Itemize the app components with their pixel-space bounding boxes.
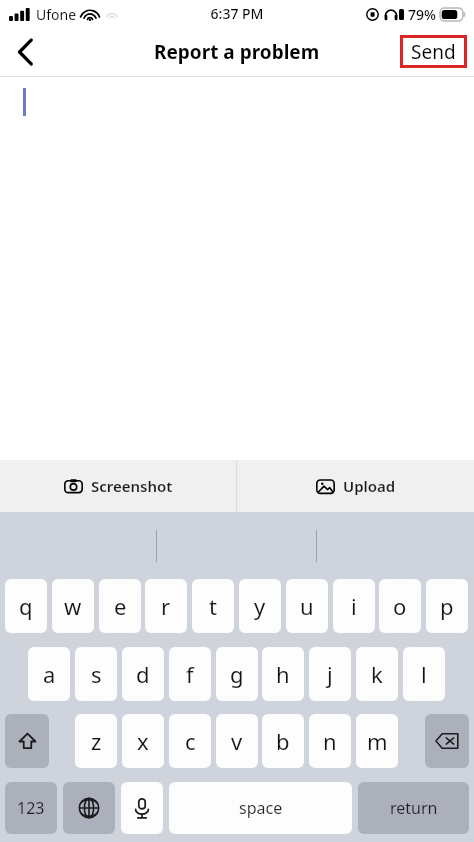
staticText: t — [209, 591, 217, 621]
button[interactable]: k — [356, 647, 398, 701]
button[interactable]: Upload — [237, 460, 474, 512]
button[interactable]: Dictate — [121, 782, 163, 834]
staticText: r — [161, 591, 171, 621]
staticText: m — [367, 726, 388, 756]
staticText: j — [327, 659, 333, 689]
button[interactable]: h — [262, 647, 304, 701]
staticText: l — [421, 659, 427, 689]
button[interactable]: q — [5, 579, 47, 633]
button[interactable]: c — [169, 714, 211, 768]
staticText: o — [393, 591, 407, 621]
staticText: z — [91, 726, 102, 756]
button[interactable]: x — [122, 714, 164, 768]
button[interactable]: Switch keyboard — [63, 782, 115, 834]
button[interactable]: j — [309, 647, 351, 701]
button[interactable]: 123 — [5, 782, 57, 834]
staticText: Screenshot — [91, 476, 173, 496]
button[interactable]: t — [192, 579, 234, 633]
staticText: v — [231, 726, 243, 756]
button[interactable]: l — [403, 647, 445, 701]
button[interactable]: d — [122, 647, 164, 701]
staticText: w — [64, 591, 82, 621]
button[interactable]: e — [99, 579, 141, 633]
button[interactable]: b — [262, 714, 304, 768]
staticText: n — [323, 726, 337, 756]
button[interactable]: Screenshot — [0, 460, 236, 512]
staticText: f — [186, 659, 194, 689]
button[interactable]: space — [169, 782, 352, 834]
staticText: q — [19, 591, 33, 621]
button[interactable]: w — [52, 579, 94, 633]
button[interactable]: Backspace — [425, 714, 469, 768]
button[interactable]: Shift — [5, 714, 49, 768]
button[interactable]: z — [75, 714, 117, 768]
staticText: b — [276, 726, 290, 756]
button[interactable]: n — [309, 714, 351, 768]
button[interactable]: m — [356, 714, 398, 768]
button[interactable]: return — [358, 782, 469, 834]
staticText: g — [230, 659, 244, 689]
button[interactable]: Back — [0, 28, 50, 76]
staticText: 123 — [17, 797, 45, 819]
button[interactable]: v — [216, 714, 258, 768]
staticText: Report a problem — [154, 39, 320, 65]
button[interactable]: g — [216, 647, 258, 701]
staticText: c — [185, 726, 196, 756]
button[interactable]: Send — [403, 38, 464, 65]
button[interactable]: y — [239, 579, 281, 633]
button[interactable]: f — [169, 647, 211, 701]
staticText: k — [371, 659, 383, 689]
button[interactable]: i — [333, 579, 375, 633]
staticText: space — [239, 797, 283, 819]
staticText: 79% — [408, 5, 436, 24]
button[interactable]: u — [286, 579, 328, 633]
staticText: i — [351, 591, 357, 621]
staticText: d — [136, 659, 150, 689]
button[interactable]: s — [75, 647, 117, 701]
staticText: u — [300, 591, 314, 621]
button[interactable]: p — [426, 579, 468, 633]
staticText: e — [114, 591, 127, 621]
staticText: h — [276, 659, 290, 689]
staticText: a — [43, 659, 56, 689]
staticText: Upload — [343, 476, 396, 496]
staticText: s — [91, 659, 102, 689]
button[interactable]: r — [145, 579, 187, 633]
button[interactable]: a — [28, 647, 70, 701]
button[interactable]: o — [379, 579, 421, 633]
staticText: Send — [411, 39, 456, 65]
staticText: 6:37 PM — [0, 4, 474, 23]
staticText: return — [390, 797, 438, 819]
staticText: Ufone — [36, 5, 77, 24]
staticText: y — [254, 591, 266, 621]
staticText: x — [137, 726, 149, 756]
staticText: p — [440, 591, 454, 621]
